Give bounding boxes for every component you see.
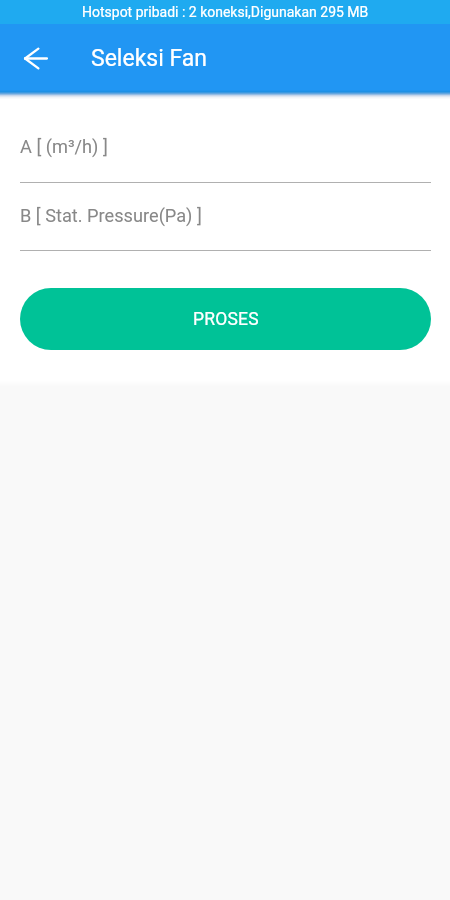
staticText: A [ (m³/h) ] [20,136,108,157]
staticText: Hotspot pribadi : 2 koneksi,Digunakan 29… [82,4,369,20]
button[interactable]: A [ (m³/h) ] [20,116,431,183]
staticText: B [ Stat. Pressure(Pa) ] [20,205,202,226]
button[interactable]: B [ Stat. Pressure(Pa) ] [20,185,431,251]
staticText: PROSES [193,309,259,330]
button[interactable]: PROSES [20,288,431,350]
button[interactable]: Navigate back [12,34,60,82]
staticText: Seleksi Fan [91,45,208,72]
